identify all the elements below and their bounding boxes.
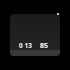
staticText: 0 13 (19, 41, 32, 50)
staticText: 85 (40, 41, 49, 51)
